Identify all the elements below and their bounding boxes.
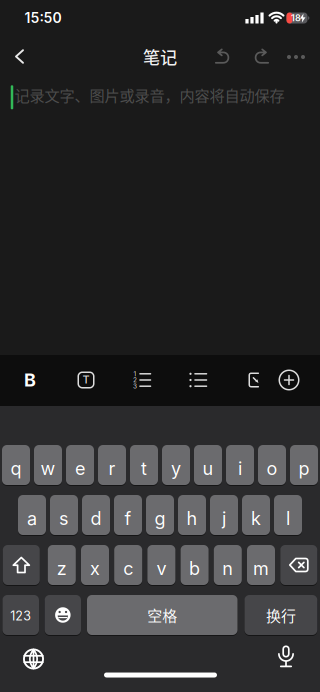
staticText: 123 (10, 608, 31, 623)
staticText: 1 (133, 370, 136, 378)
button[interactable]: 换行 (244, 594, 317, 636)
staticText: 15:50 (24, 9, 61, 26)
button[interactable]: Add attachment (271, 360, 307, 400)
button[interactable]: i (226, 444, 254, 486)
button[interactable]: Bullet list (180, 360, 216, 400)
button[interactable]: d (82, 494, 110, 536)
button[interactable]: Numbered list (124, 360, 160, 400)
staticText: B (24, 369, 36, 391)
button[interactable]: b (181, 544, 209, 586)
staticText: c (123, 558, 133, 579)
button[interactable]: Undo (208, 41, 238, 71)
staticText: f (124, 508, 131, 529)
staticText: o (266, 458, 277, 479)
button[interactable]: Next keyboard (16, 642, 50, 676)
staticText: j (222, 508, 226, 529)
staticText: m (253, 558, 269, 579)
button[interactable]: e (66, 444, 94, 486)
button[interactable]: Bold (12, 360, 48, 400)
button[interactable]: x (81, 544, 109, 586)
button[interactable]: Emoji (45, 594, 81, 636)
staticText: s (59, 508, 69, 529)
staticText: k (251, 508, 261, 529)
staticText: v (156, 558, 166, 579)
staticText: r (108, 458, 115, 479)
staticText: T (82, 373, 89, 386)
button[interactable]: Text style (68, 360, 104, 400)
button[interactable]: t (130, 444, 158, 486)
staticText: i (238, 458, 242, 479)
button[interactable]: f (114, 494, 142, 536)
button[interactable]: l (274, 494, 302, 536)
staticText: 18 (291, 13, 301, 23)
staticText: b (189, 558, 200, 579)
staticText: t (141, 458, 147, 479)
button[interactable]: Delete (280, 544, 317, 586)
button[interactable]: o (258, 444, 286, 486)
button[interactable]: q (2, 444, 30, 486)
staticText: d (90, 508, 101, 529)
button[interactable]: u (194, 444, 222, 486)
button[interactable]: z (48, 544, 76, 586)
button[interactable]: a (18, 494, 46, 536)
button[interactable]: 123 (2, 594, 39, 636)
button[interactable]: Back (2, 39, 36, 73)
button[interactable]: m (247, 544, 275, 586)
staticText: w (40, 458, 55, 479)
button[interactable]: More (281, 42, 311, 72)
button[interactable]: s (50, 494, 78, 536)
staticText: n (222, 558, 233, 579)
button[interactable]: Dictation (269, 640, 303, 674)
staticText: 记录文字、图片或录音，内容将自动保存 (14, 84, 284, 106)
button[interactable]: g (146, 494, 174, 536)
staticText: g (154, 508, 165, 529)
staticText: q (10, 458, 21, 479)
button[interactable]: r (98, 444, 126, 486)
button[interactable]: 空格 (87, 594, 237, 636)
button[interactable]: w (34, 444, 62, 486)
button[interactable]: v (147, 544, 175, 586)
staticText: 空格 (147, 604, 177, 626)
button[interactable]: h (178, 494, 206, 536)
staticText: 3 (133, 382, 137, 390)
staticText: x (90, 558, 100, 579)
staticText: e (75, 458, 85, 479)
staticText: 换行 (266, 604, 296, 626)
button[interactable]: Handwriting (236, 360, 272, 400)
staticText: l (286, 508, 290, 529)
staticText: y (171, 458, 181, 479)
staticText: 笔记 (143, 44, 177, 69)
button[interactable]: p (290, 444, 318, 486)
button[interactable]: c (114, 544, 142, 586)
staticText: p (298, 458, 309, 479)
staticText: z (57, 558, 67, 579)
button[interactable]: k (242, 494, 270, 536)
button[interactable]: y (162, 444, 190, 486)
staticText: h (186, 508, 197, 529)
button[interactable]: j (210, 494, 238, 536)
staticText: a (27, 508, 37, 529)
staticText: u (202, 458, 213, 479)
button[interactable]: n (214, 544, 242, 586)
button[interactable]: Redo (246, 41, 276, 71)
button[interactable]: Shift (3, 544, 40, 586)
staticText: 2 (133, 376, 137, 384)
